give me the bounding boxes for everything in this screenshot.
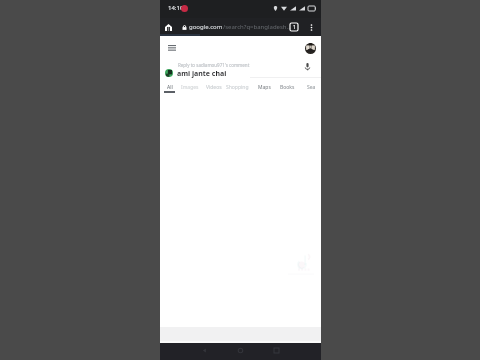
button[interactable]: Recent apps [269,343,283,357]
staticText: Shopping [226,84,249,91]
staticText: /search?q=bangladesh... [223,23,292,31]
button[interactable]: Search by voice [302,62,312,72]
staticText: All [167,84,173,91]
staticText: google.com [189,23,223,31]
staticText: 14:10 [168,4,184,12]
staticText: Images [181,84,199,91]
button[interactable]: Home [233,343,247,357]
button[interactable]: Menu [166,41,178,53]
button[interactable]: Images [180,79,200,93]
staticText: Videos [206,84,222,91]
button[interactable]: More options [305,21,317,33]
button[interactable]: Videos [205,79,223,93]
staticText: Books [280,84,295,91]
staticText: 1 [293,24,296,31]
button[interactable]: Shopping [225,79,249,93]
staticText: Sea [307,84,316,91]
staticText: Reply to sadiamou971's comment [178,62,250,68]
button[interactable]: All [163,79,177,93]
staticText: ami jante chai [177,69,227,79]
staticText: Maps [258,84,271,91]
button[interactable]: Sea [304,79,319,93]
button[interactable]: Google account [305,43,316,54]
button[interactable]: Switch tabs [288,21,300,33]
button[interactable]: Home [163,22,174,33]
button[interactable]: Maps [255,79,273,93]
button[interactable]: Books [278,79,296,93]
